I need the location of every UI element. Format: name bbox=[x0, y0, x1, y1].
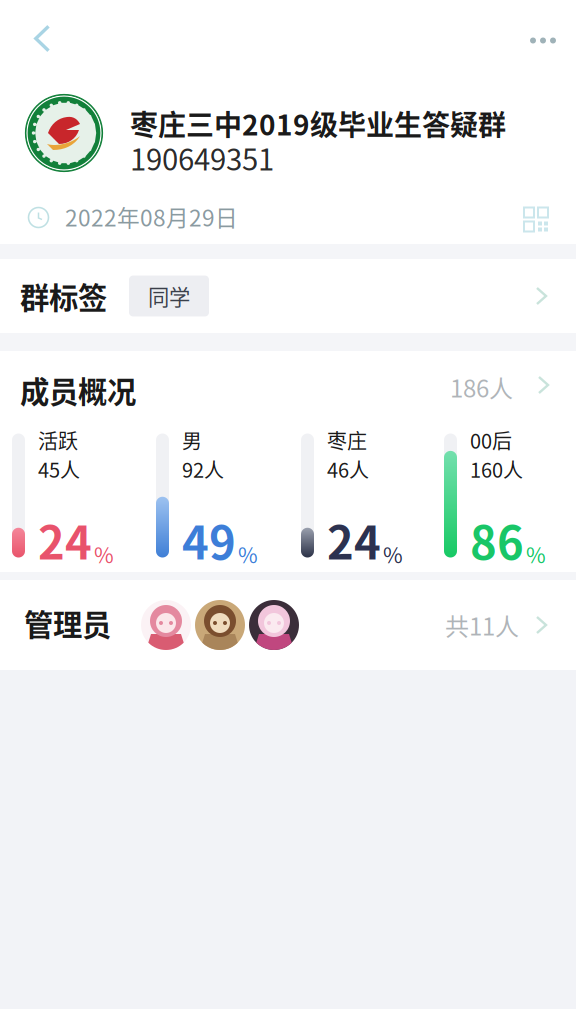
staticText: 群标签 bbox=[20, 275, 107, 317]
staticText: 2022年08月29日 bbox=[65, 200, 238, 233]
staticText: 24 bbox=[38, 507, 92, 572]
button[interactable]: More bbox=[510, 19, 576, 61]
staticText: % bbox=[94, 539, 114, 569]
staticText: 枣庄三中2019级毕业生答疑群 bbox=[130, 103, 506, 143]
button[interactable]: 管理员 bbox=[0, 580, 576, 670]
staticText: 共11人 bbox=[445, 608, 519, 642]
staticText: 186人 bbox=[450, 370, 513, 404]
button[interactable]: 群标签 bbox=[0, 259, 576, 333]
staticText: 49 bbox=[182, 507, 236, 572]
button[interactable]: Group QR code bbox=[524, 202, 548, 226]
staticText: 男 bbox=[182, 425, 202, 454]
staticText: 枣庄 bbox=[327, 425, 367, 454]
staticText: 190649351 bbox=[130, 136, 274, 179]
staticText: 86 bbox=[470, 507, 524, 572]
staticText: % bbox=[383, 539, 403, 569]
staticText: 成员概况 bbox=[20, 369, 136, 411]
staticText: 00后 bbox=[470, 425, 512, 454]
staticText: 管理员 bbox=[24, 602, 111, 644]
button[interactable]: 成员概况 bbox=[0, 351, 576, 419]
staticText: 46人 bbox=[327, 454, 369, 483]
staticText: 92人 bbox=[182, 454, 224, 483]
button[interactable]: Back bbox=[0, 12, 72, 68]
staticText: 45人 bbox=[38, 454, 80, 483]
staticText: 160人 bbox=[470, 454, 523, 483]
staticText: % bbox=[238, 539, 258, 569]
staticText: 同学 bbox=[148, 281, 190, 311]
staticText: 24 bbox=[327, 507, 381, 572]
staticText: % bbox=[526, 539, 546, 569]
staticText: 活跃 bbox=[38, 425, 78, 454]
